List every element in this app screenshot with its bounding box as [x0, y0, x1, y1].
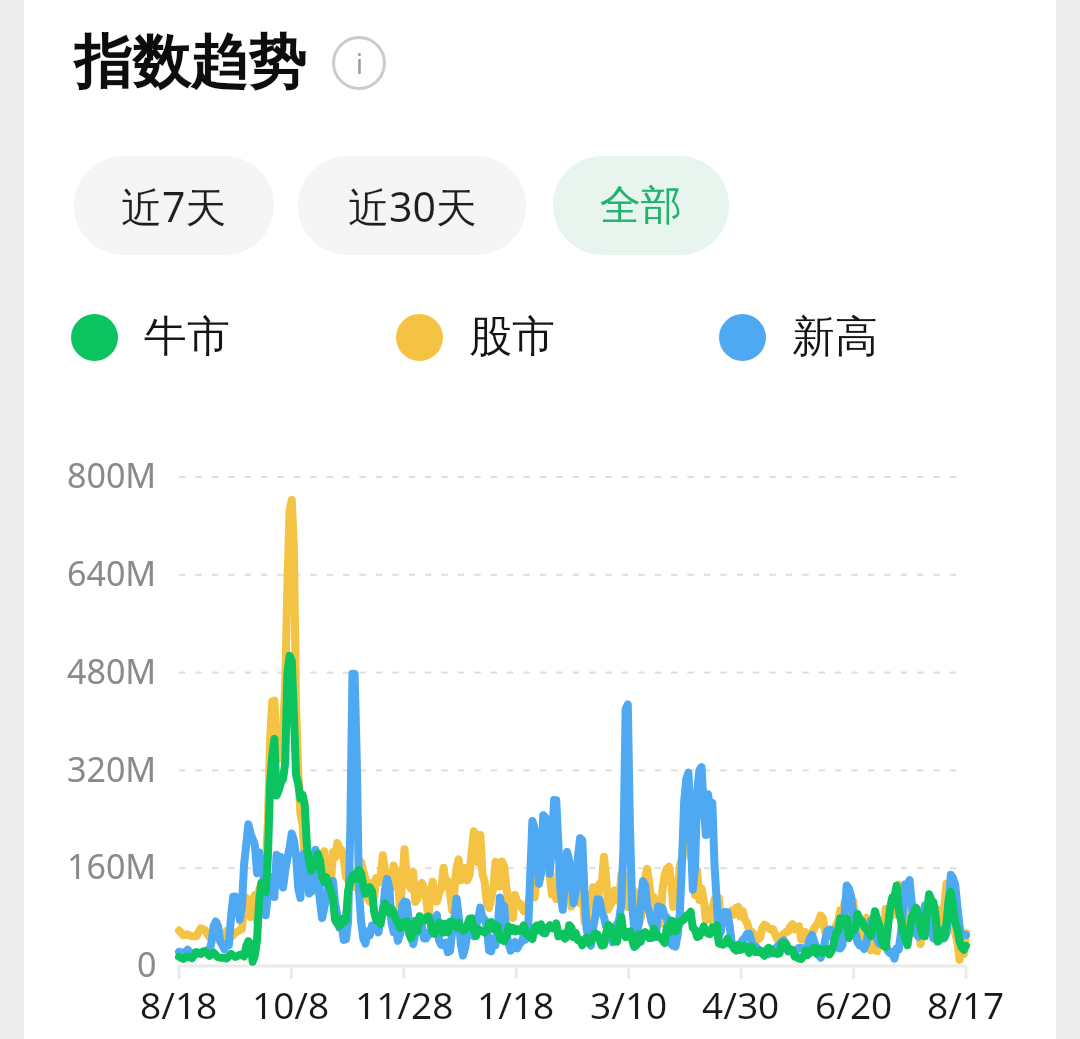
staticText: 480M — [67, 648, 157, 694]
staticText: 6/20 — [815, 979, 893, 1029]
staticText: 0 — [137, 941, 157, 987]
staticText: 股市 — [469, 310, 555, 364]
button[interactable]: 新高 — [719, 310, 878, 364]
staticText: 全部 — [600, 180, 682, 232]
button[interactable]: 全部 — [553, 156, 729, 255]
staticText: 4/30 — [702, 979, 780, 1029]
staticText: 近7天 — [121, 178, 227, 234]
staticText: 320M — [67, 746, 157, 792]
staticText: 3/10 — [590, 979, 668, 1029]
staticText: 1/18 — [477, 979, 555, 1029]
button[interactable]: 股市 — [396, 310, 555, 364]
staticText: 8/18 — [140, 979, 218, 1029]
staticText: 800M — [67, 452, 157, 498]
staticText: 指数趋势 — [74, 26, 306, 99]
staticText: 10/8 — [252, 979, 330, 1029]
button[interactable]: 说明 — [332, 36, 386, 90]
button[interactable]: 近7天 — [74, 156, 274, 255]
staticText: 新高 — [792, 310, 878, 364]
staticText: 11/28 — [355, 979, 454, 1029]
button[interactable]: 近30天 — [298, 156, 526, 255]
staticText: 160M — [67, 843, 157, 889]
staticText: 近30天 — [348, 178, 477, 234]
button[interactable]: 牛市 — [71, 310, 230, 364]
staticText: 640M — [67, 550, 157, 596]
staticText: 8/17 — [927, 979, 1005, 1029]
staticText: 牛市 — [144, 310, 230, 364]
staticText: i — [356, 45, 363, 82]
